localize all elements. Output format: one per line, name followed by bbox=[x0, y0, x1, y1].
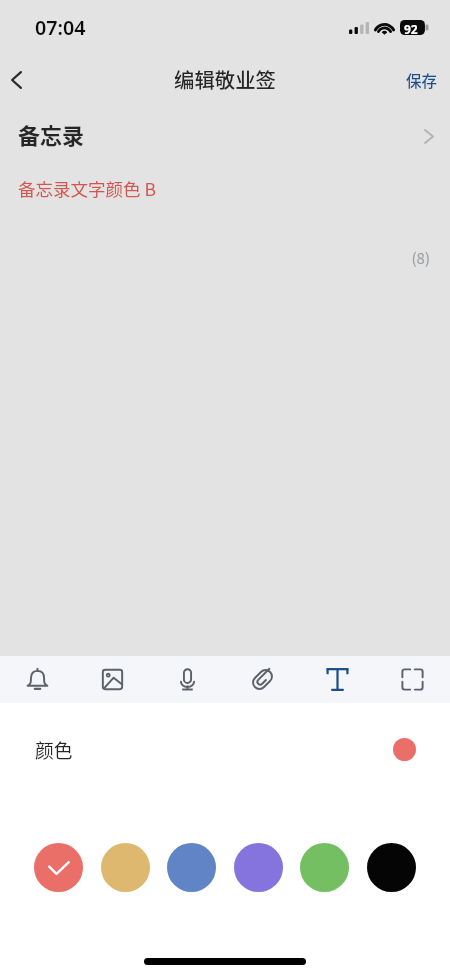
staticText: 备忘录文字颜色 B bbox=[18, 176, 156, 201]
button[interactable]: Attachment bbox=[225, 656, 300, 703]
button[interactable]: 备忘录 bbox=[0, 109, 450, 159]
button[interactable] bbox=[234, 843, 283, 892]
button[interactable]: Text style bbox=[300, 656, 375, 703]
button[interactable]: Voice input bbox=[150, 656, 225, 703]
button[interactable]: Reminder bbox=[0, 656, 75, 703]
button[interactable]: Fullscreen bbox=[375, 656, 450, 703]
button[interactable] bbox=[300, 843, 349, 892]
button[interactable]: 颜色 bbox=[0, 724, 450, 774]
staticText: (8) bbox=[0, 247, 430, 269]
button[interactable] bbox=[101, 843, 150, 892]
button[interactable]: Image bbox=[75, 656, 150, 703]
button[interactable] bbox=[367, 843, 416, 892]
staticText: 92 bbox=[404, 21, 418, 37]
staticText: 备忘录 bbox=[18, 118, 85, 150]
staticText: 颜色 bbox=[35, 736, 73, 763]
button[interactable] bbox=[167, 843, 216, 892]
button[interactable]: 保存 bbox=[384, 57, 450, 103]
staticText: 07:04 bbox=[35, 14, 86, 41]
staticText: 编辑敬业签 bbox=[174, 64, 276, 94]
button[interactable] bbox=[34, 843, 83, 892]
button[interactable]: Back bbox=[0, 56, 40, 104]
staticText: 保存 bbox=[406, 69, 438, 91]
